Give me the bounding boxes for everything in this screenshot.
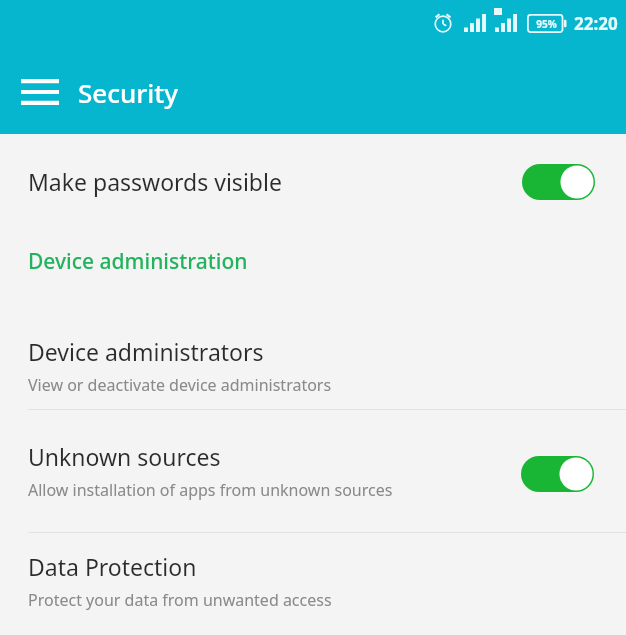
button[interactable]: Data Protection xyxy=(0,533,626,628)
staticText: View or deactivate device administrators xyxy=(28,374,332,396)
staticText: Device administration xyxy=(28,247,248,276)
staticText: Security xyxy=(78,75,178,110)
staticText: 22:20 xyxy=(574,12,618,35)
staticText: Allow installation of apps from unknown … xyxy=(28,479,393,501)
staticText: Make passwords visible xyxy=(28,166,282,197)
button[interactable]: Toggle, on xyxy=(521,456,594,492)
staticText: Device administrators xyxy=(28,336,264,367)
button[interactable]: Device administrators xyxy=(0,323,626,409)
button[interactable]: Toggle, on xyxy=(522,164,595,200)
staticText: Unknown sources xyxy=(28,441,221,472)
staticText: Data Protection xyxy=(28,551,197,582)
staticText: 95% xyxy=(536,17,557,31)
staticText: Protect your data from unwanted access xyxy=(28,589,332,611)
button[interactable]: Open navigation menu xyxy=(14,66,66,118)
button[interactable]: Unknown sources xyxy=(0,410,626,532)
button[interactable]: Make passwords visible xyxy=(0,134,626,229)
